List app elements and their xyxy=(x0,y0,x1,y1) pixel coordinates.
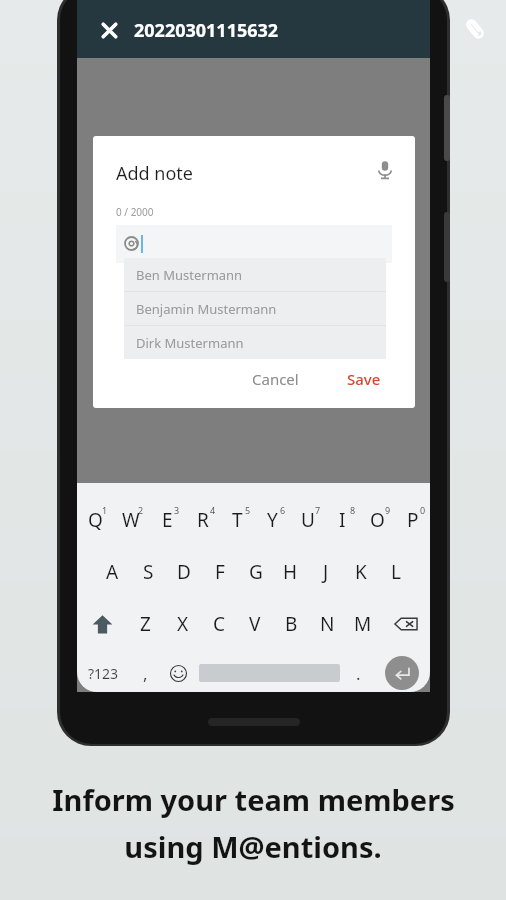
staticText: F xyxy=(215,559,225,585)
staticText: B xyxy=(285,611,298,637)
button[interactable]: P xyxy=(395,497,430,543)
staticText: 4 xyxy=(210,504,216,516)
button[interactable]: Cancel xyxy=(240,361,311,397)
button[interactable]: , xyxy=(130,653,161,692)
staticText: 3 xyxy=(174,504,180,516)
button[interactable]: T xyxy=(220,497,255,543)
staticText: Q xyxy=(88,507,103,533)
staticText: 0 xyxy=(420,504,426,516)
button[interactable]: M xyxy=(345,601,381,647)
staticText: Ben Mustermann xyxy=(136,266,243,284)
button[interactable]: H xyxy=(273,549,308,595)
button[interactable]: Y xyxy=(255,497,290,543)
staticText: N xyxy=(320,611,335,637)
staticText: Z xyxy=(140,611,151,637)
staticText: 9 xyxy=(385,504,391,516)
staticText: C xyxy=(213,611,226,637)
button[interactable]: D xyxy=(166,549,202,595)
button[interactable]: Close xyxy=(89,10,129,50)
button[interactable]: Enter xyxy=(385,656,419,690)
button[interactable]: Z xyxy=(127,601,164,647)
staticText: S xyxy=(143,559,154,585)
staticText: 8 xyxy=(350,504,356,516)
button[interactable]: G xyxy=(238,549,273,595)
staticText: E xyxy=(162,507,173,533)
staticText: using M@entions. xyxy=(124,827,382,866)
button[interactable]: V xyxy=(237,601,273,647)
staticText: 5 xyxy=(245,504,251,516)
button[interactable]: O xyxy=(360,497,395,543)
button[interactable]: Backspace xyxy=(381,601,430,647)
staticText: D xyxy=(177,559,191,585)
staticText: 2 xyxy=(138,504,144,516)
staticText: I xyxy=(339,507,346,533)
button[interactable]: Dirk Mustermann xyxy=(124,326,386,359)
button[interactable]: Emoji xyxy=(161,653,196,692)
staticText: V xyxy=(249,611,261,637)
staticText: 6 xyxy=(280,504,286,516)
staticText: T xyxy=(232,507,243,533)
button[interactable]: C xyxy=(201,601,237,647)
button[interactable]: E xyxy=(149,497,185,543)
button[interactable]: A xyxy=(94,549,130,595)
staticText: R xyxy=(197,507,209,533)
button[interactable]: I xyxy=(325,497,360,543)
staticText: Add note xyxy=(116,161,193,186)
button[interactable]: S xyxy=(130,549,166,595)
button[interactable]: Q xyxy=(77,497,113,543)
staticText: 0 / 2000 xyxy=(116,205,154,219)
button[interactable]: Attach xyxy=(455,9,495,49)
staticText: 20220301115632 xyxy=(134,18,279,43)
button[interactable]: B xyxy=(273,601,309,647)
staticText: X xyxy=(177,611,189,637)
staticText: Dirk Mustermann xyxy=(136,334,244,352)
button[interactable]: Voice input xyxy=(365,150,405,190)
staticText: , xyxy=(143,662,148,685)
button[interactable]: U xyxy=(290,497,325,543)
button[interactable]: X xyxy=(164,601,201,647)
button[interactable]: Benjamin Mustermann xyxy=(124,292,386,325)
button[interactable]: R xyxy=(185,497,220,543)
button[interactable]: J xyxy=(308,549,343,595)
staticText: 7 xyxy=(315,504,321,516)
staticText: P xyxy=(407,507,419,533)
staticText: 1 xyxy=(102,504,108,516)
button[interactable]: W xyxy=(113,497,149,543)
staticText: W xyxy=(122,507,140,533)
button[interactable]: L xyxy=(378,549,413,595)
staticText: Y xyxy=(267,507,278,533)
staticText: Save xyxy=(347,369,381,389)
button[interactable]: K xyxy=(343,549,378,595)
staticText: K xyxy=(355,559,367,585)
button[interactable]: N xyxy=(309,601,345,647)
staticText: O xyxy=(370,507,385,533)
staticText: . xyxy=(356,662,361,685)
button[interactable]: . xyxy=(343,653,374,692)
staticText: U xyxy=(301,507,315,533)
staticText: Inform your team members xyxy=(52,780,455,819)
staticText: Cancel xyxy=(252,369,299,389)
button[interactable]: Shift xyxy=(77,601,127,647)
staticText: M xyxy=(354,611,372,637)
button[interactable]: F xyxy=(202,549,238,595)
button[interactable]: ?123 xyxy=(77,653,130,692)
staticText: G xyxy=(249,559,263,585)
staticText: Benjamin Mustermann xyxy=(136,300,277,318)
button[interactable]: Save xyxy=(335,361,393,397)
staticText: L xyxy=(391,559,401,585)
staticText: H xyxy=(283,559,298,585)
staticText: ?123 xyxy=(88,664,119,683)
staticText: J xyxy=(323,559,329,585)
staticText: A xyxy=(106,559,119,585)
button[interactable]: Ben Mustermann xyxy=(124,258,386,291)
button[interactable] xyxy=(116,225,392,263)
